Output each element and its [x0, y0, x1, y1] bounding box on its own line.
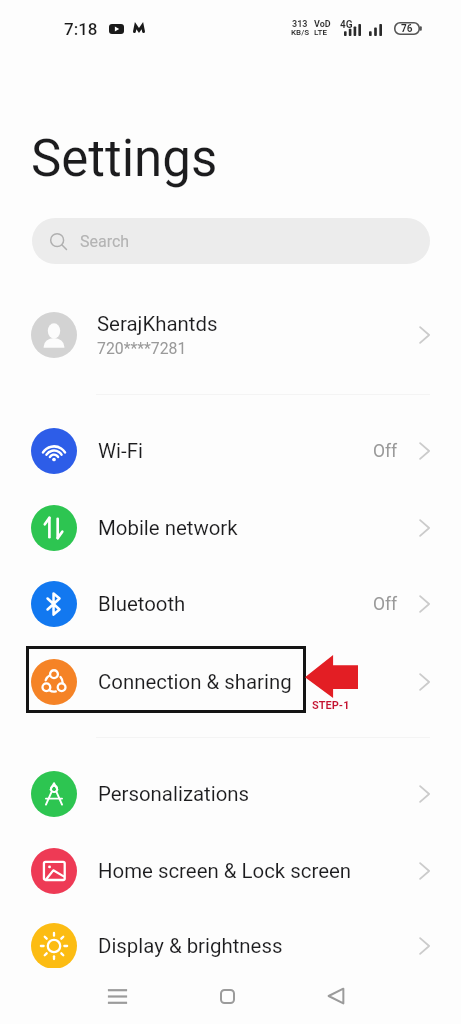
button[interactable]: Mobile network: [0, 490, 461, 566]
staticText: Search: [80, 232, 130, 251]
staticText: Connection & sharing: [98, 670, 292, 694]
staticText: KB/S: [291, 28, 310, 37]
other: Open: [419, 673, 430, 691]
other: Open: [419, 595, 430, 613]
staticText: Personalizations: [98, 782, 250, 806]
staticText: 76: [401, 23, 413, 35]
staticText: Mobile network: [98, 516, 238, 540]
staticText: STEP-1: [312, 699, 350, 712]
button[interactable]: Connection & sharing: [0, 644, 461, 720]
staticText: Off: [373, 594, 398, 615]
staticText: VoD: [314, 19, 331, 30]
other: Open: [419, 442, 430, 460]
staticText: Off: [373, 441, 398, 462]
other: Open: [419, 937, 430, 955]
staticText: 4G: [340, 19, 353, 31]
button[interactable]: Search: [32, 218, 430, 264]
staticText: Wi-Fi: [98, 439, 143, 463]
other: Step 1 arrow: [305, 655, 358, 698]
button[interactable]: Wi-Fi: [0, 413, 461, 489]
staticText: SerajKhantds: [97, 312, 218, 336]
button[interactable]: Home: [203, 972, 251, 1020]
button[interactable]: SerajKhantds: [0, 297, 461, 373]
button[interactable]: Bluetooth: [0, 566, 461, 642]
staticText: Settings: [31, 129, 218, 189]
button[interactable]: Display & brightness: [0, 908, 461, 984]
button[interactable]: Personalizations: [0, 756, 461, 832]
other: Open: [419, 326, 430, 344]
staticText: 313: [292, 19, 308, 30]
staticText: Home screen & Lock screen: [98, 859, 352, 883]
other: Open: [419, 785, 430, 803]
button[interactable]: Home screen & Lock screen: [0, 833, 461, 909]
staticText: Bluetooth: [98, 592, 186, 616]
staticText: 7:18: [64, 19, 98, 39]
button[interactable]: Back: [312, 972, 360, 1020]
other: Open: [419, 519, 430, 537]
button[interactable]: Recents: [93, 972, 141, 1020]
staticText: LTE: [314, 28, 327, 37]
staticText: 720****7281: [97, 339, 187, 358]
other: Open: [419, 862, 430, 880]
staticText: Display & brightness: [98, 934, 283, 958]
